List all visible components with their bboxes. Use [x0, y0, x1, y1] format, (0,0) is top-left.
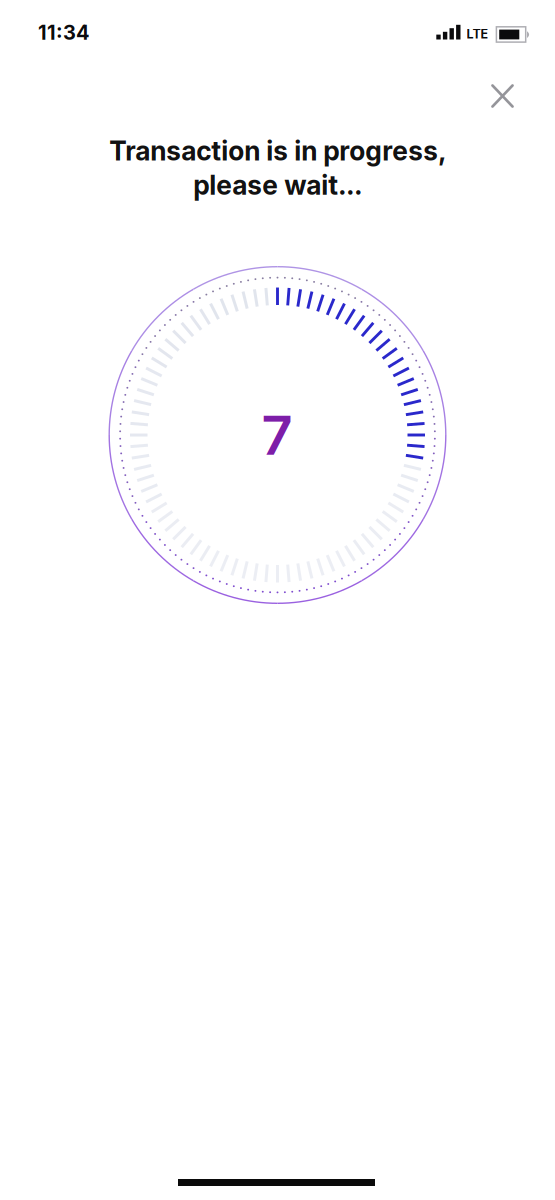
- staticText: 11:34: [38, 21, 90, 44]
- staticText: LTE: [466, 27, 488, 41]
- staticText: Transaction is in progress, please wait.…: [109, 135, 446, 201]
- staticText: 7: [261, 403, 292, 467]
- button[interactable]: [480, 73, 524, 117]
